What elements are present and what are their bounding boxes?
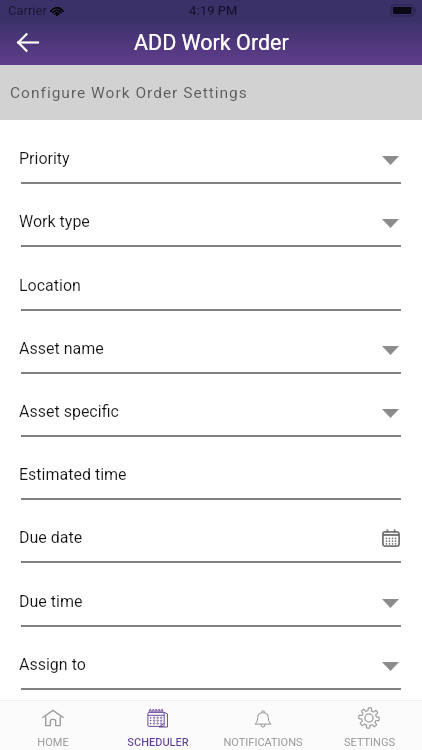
staticText: Assign to xyxy=(19,655,86,674)
button[interactable]: HOME xyxy=(0,701,105,750)
button[interactable]: NOTIFICATIONS xyxy=(210,701,316,750)
button[interactable]: Assign to xyxy=(0,627,422,690)
staticText: SETTINGS xyxy=(344,736,395,749)
button[interactable]: Back xyxy=(10,25,45,60)
staticText: Priority xyxy=(19,149,70,168)
staticText: HOME xyxy=(37,736,69,749)
staticText: Carrier xyxy=(8,3,47,18)
button[interactable]: SETTINGS xyxy=(316,701,422,750)
staticText: NOTIFICATIONS xyxy=(223,736,303,749)
button[interactable]: Due date xyxy=(0,500,422,563)
button[interactable]: Asset name xyxy=(0,311,422,374)
staticText: Asset name xyxy=(19,339,104,358)
button[interactable]: Location xyxy=(0,247,422,311)
staticText: Location xyxy=(19,276,81,295)
button[interactable]: Estimated time xyxy=(0,437,422,500)
staticText: 4:19 PM xyxy=(189,3,238,18)
staticText: Asset specific xyxy=(19,402,119,421)
button[interactable]: Priority xyxy=(0,120,422,184)
staticText: Work type xyxy=(19,212,90,231)
staticText: Configure Work Order Settings xyxy=(10,84,248,102)
staticText: Due date xyxy=(19,528,83,547)
button[interactable]: Asset specific xyxy=(0,374,422,437)
button[interactable]: Work type xyxy=(0,184,422,247)
staticText: ADD Work Order xyxy=(134,30,289,55)
button[interactable]: Due time xyxy=(0,563,422,627)
staticText: SCHEDULER xyxy=(127,736,189,749)
button[interactable]: SCHEDULER xyxy=(105,701,210,750)
staticText: Due time xyxy=(19,592,83,611)
staticText: Estimated time xyxy=(19,465,127,484)
